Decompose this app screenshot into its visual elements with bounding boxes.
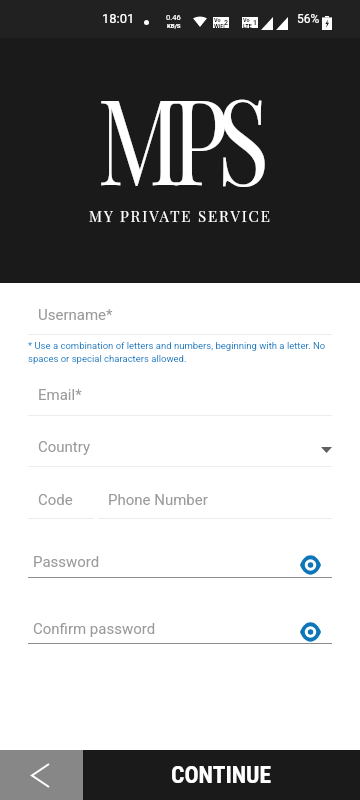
button[interactable]: Username* <box>28 306 332 340</box>
staticText: CONTINUE <box>171 761 272 789</box>
button[interactable]: Back <box>0 750 83 800</box>
staticText: * Use a combination of letters and numbe… <box>28 340 328 365</box>
staticText: Country <box>38 438 308 456</box>
staticText: KB/S <box>167 22 181 29</box>
staticText: Code <box>38 491 94 509</box>
staticText: Username* <box>38 306 332 324</box>
staticText: Phone Number <box>108 491 332 509</box>
staticText: LTE <box>243 23 252 28</box>
button[interactable]: Show password <box>298 620 322 644</box>
staticText: 2 <box>224 19 229 27</box>
button[interactable]: CONTINUE <box>83 750 360 800</box>
staticText: Vo <box>243 17 250 23</box>
button[interactable]: Show password <box>298 553 322 577</box>
staticText: Vo <box>214 17 221 23</box>
staticText: WiFi <box>214 23 225 28</box>
button[interactable]: Email* <box>28 386 332 420</box>
staticText: 18:01 <box>102 11 135 26</box>
staticText: 56% <box>297 12 320 26</box>
staticText: MPS <box>97 57 259 214</box>
staticText: MY PRIVATE SERVICE <box>89 206 272 226</box>
button[interactable]: Code <box>28 491 94 525</box>
staticText: Password <box>33 553 308 571</box>
button[interactable]: Confirm password <box>28 620 332 654</box>
staticText: 1 <box>253 19 258 27</box>
button[interactable]: Select country <box>314 436 338 460</box>
staticText: Email* <box>38 386 332 404</box>
button[interactable]: Phone Number <box>98 491 332 525</box>
button[interactable]: Password <box>28 553 332 587</box>
staticText: 0.46 <box>166 13 181 22</box>
button[interactable]: Country <box>28 438 332 472</box>
staticText: Confirm password <box>33 620 308 638</box>
